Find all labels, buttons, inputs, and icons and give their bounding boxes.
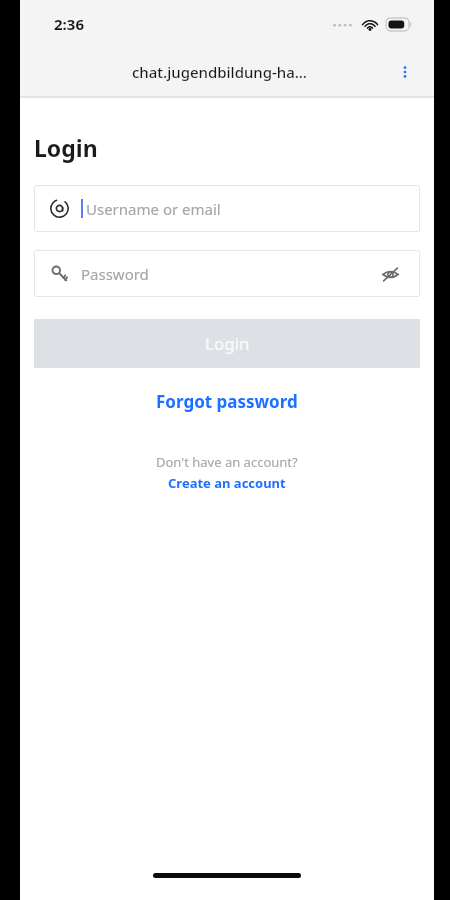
staticText: Create an account	[168, 474, 286, 492]
button[interactable]: Show password	[376, 260, 404, 288]
staticText: 2:36	[54, 14, 84, 34]
staticText: chat.jugendbildung-ha…	[132, 62, 308, 82]
staticText: Password	[81, 264, 376, 284]
staticText: Login	[34, 132, 98, 163]
button[interactable]: Username or email	[34, 185, 420, 232]
staticText: Forgot password	[156, 390, 298, 413]
staticText: Login	[205, 332, 250, 355]
button[interactable]: Forgot password	[34, 390, 420, 413]
staticText: Don't have an account?	[156, 453, 298, 471]
staticText: Username or email	[86, 199, 404, 219]
button[interactable]: Create an account	[168, 474, 286, 492]
button[interactable]: More options	[390, 57, 420, 87]
button[interactable]: Password	[34, 250, 420, 297]
